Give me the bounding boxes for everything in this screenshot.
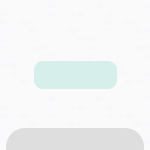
button[interactable]: Selected card [34,61,117,89]
button[interactable]: Sheet [6,128,144,150]
